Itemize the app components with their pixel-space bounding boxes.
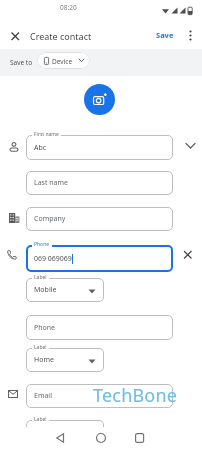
- staticText: 069 069069: [34, 254, 72, 264]
- staticText: Create contact: [30, 30, 92, 42]
- staticText: Home: [34, 355, 54, 365]
- staticText: Phone: [34, 323, 56, 333]
- button[interactable]: [96, 433, 106, 443]
- button[interactable]: Company: [26, 207, 173, 231]
- staticText: Label: [34, 274, 47, 281]
- button[interactable]: 069 069069: [26, 245, 173, 272]
- button[interactable]: Home: [26, 348, 104, 372]
- staticText: Save: [156, 30, 174, 40]
- button[interactable]: [185, 142, 196, 150]
- staticText: Save to: [10, 58, 33, 67]
- button[interactable]: [135, 433, 144, 443]
- staticText: Last name: [34, 178, 69, 188]
- staticText: Abc: [34, 143, 47, 153]
- staticText: Mobile: [34, 285, 57, 295]
- button[interactable]: [183, 250, 193, 260]
- button[interactable]: Abc: [26, 135, 173, 160]
- staticText: Label: [34, 416, 47, 423]
- staticText: Phone: [34, 241, 50, 248]
- staticText: Company: [34, 214, 66, 224]
- staticText: TechBone: [93, 383, 178, 408]
- button[interactable]: [26, 420, 104, 444]
- button[interactable]: [56, 433, 65, 443]
- button[interactable]: Phone: [26, 315, 173, 340]
- staticText: Email: [34, 391, 52, 401]
- button[interactable]: Email: [26, 384, 173, 408]
- button[interactable]: [11, 32, 20, 41]
- staticText: 08:20: [60, 3, 77, 12]
- button[interactable]: [188, 30, 193, 42]
- staticText: Device: [52, 57, 73, 66]
- staticText: Label: [34, 344, 47, 351]
- staticText: First name: [34, 131, 59, 138]
- button[interactable]: Device: [37, 52, 90, 69]
- button[interactable]: Last name: [26, 171, 173, 195]
- button[interactable]: [84, 84, 115, 115]
- button[interactable]: Save: [152, 27, 178, 43]
- button[interactable]: Mobile: [26, 278, 104, 302]
